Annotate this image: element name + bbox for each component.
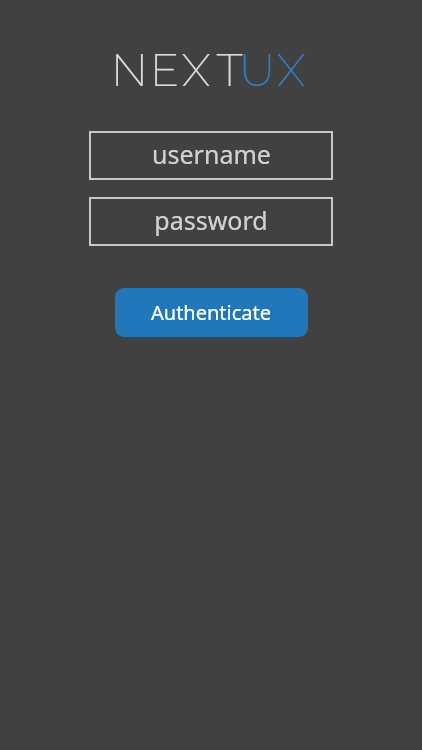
staticText: T (216, 44, 244, 97)
button[interactable]: password (89, 197, 333, 246)
staticText: X (182, 44, 211, 97)
staticText: U (240, 44, 275, 97)
staticText: password (154, 203, 268, 237)
staticText: E (151, 44, 179, 97)
button[interactable]: username (89, 131, 333, 180)
staticText: X (277, 44, 306, 97)
staticText: Authenticate (151, 299, 272, 326)
staticText: username (152, 137, 271, 171)
staticText: N (112, 44, 147, 97)
button[interactable]: Authenticate (115, 288, 308, 337)
